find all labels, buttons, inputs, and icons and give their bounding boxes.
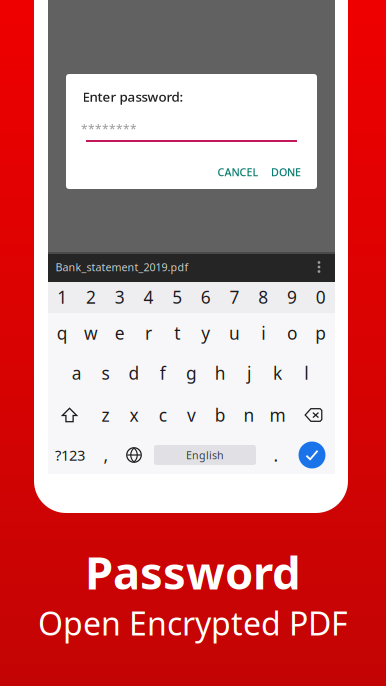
staticText: 0 [316,285,326,308]
staticText: 6 [201,285,211,308]
button[interactable]: ?123 [48,436,92,474]
staticText: 3 [115,285,125,308]
staticText: j [247,361,251,384]
button[interactable]: k [263,354,292,392]
staticText: c [159,403,167,426]
button[interactable]: 1 [48,281,77,312]
staticText: , [103,443,108,466]
button[interactable]: 6 [191,281,220,312]
staticText: i [261,321,265,344]
button[interactable]: y [191,314,220,352]
button[interactable]: 8 [249,281,278,312]
button[interactable]: i [249,314,278,352]
staticText: x [130,403,139,426]
staticText: d [129,361,140,384]
staticText: s [101,361,109,384]
staticText: z [101,403,109,426]
staticText: k [273,361,282,384]
button[interactable]: u [220,314,249,352]
staticText: ?123 [55,445,85,465]
staticText: CANCEL [217,165,258,179]
staticText: u [229,321,240,344]
button[interactable]: t [163,314,191,352]
button[interactable]: d [120,354,148,392]
staticText: w [84,321,98,344]
staticText: Open Encrypted PDF [38,602,348,644]
button[interactable]: p [306,314,335,352]
button[interactable]: DONE [265,160,307,184]
staticText: Enter password: [82,88,183,105]
button[interactable]: a [62,354,91,392]
staticText: 9 [287,285,297,308]
staticText: a [72,361,82,384]
button[interactable]: 4 [134,281,163,312]
button[interactable]: r [134,314,163,352]
staticText: l [304,361,308,384]
button[interactable]: 0 [306,281,335,312]
staticText: h [215,361,226,384]
button[interactable]: f [148,354,177,392]
button[interactable]: n [235,396,263,434]
button[interactable]: More options [308,254,330,280]
staticText: t [174,321,180,344]
staticText: e [115,321,125,344]
button[interactable]: English [154,445,256,465]
button[interactable]: e [105,314,134,352]
staticText: o [287,321,297,344]
staticText: 1 [57,285,67,308]
staticText: p [315,321,326,344]
staticText: 4 [143,285,153,308]
staticText: 2 [86,285,96,308]
button[interactable]: CANCEL [212,160,264,184]
button[interactable]: 7 [220,281,249,312]
button[interactable]: s [91,354,120,392]
button[interactable]: b [206,396,234,434]
button[interactable]: g [177,354,206,392]
button[interactable]: . [262,436,290,474]
staticText: 8 [258,285,268,308]
staticText: ******** [81,121,137,137]
button[interactable]: Enter [295,436,329,474]
button[interactable]: w [77,314,105,352]
button[interactable]: m [263,396,292,434]
button[interactable]: v [177,396,206,434]
staticText: b [215,403,226,426]
staticText: 5 [172,285,182,308]
button[interactable]: c [148,396,177,434]
staticText: y [201,321,210,344]
staticText: . [273,443,278,466]
button[interactable]: 3 [105,281,134,312]
button[interactable]: , [93,436,119,474]
button[interactable]: z [91,396,120,434]
button[interactable]: 2 [77,281,105,312]
button[interactable]: j [235,354,263,392]
button[interactable]: 5 [163,281,191,312]
staticText: v [187,403,196,426]
button[interactable]: l [292,354,321,392]
staticText: English [186,448,224,462]
button[interactable]: q [48,314,77,352]
staticText: Bank_statement_2019.pdf [55,260,188,274]
staticText: 7 [229,285,239,308]
button[interactable]: Shift [48,396,91,434]
button[interactable]: 9 [278,281,306,312]
button[interactable]: Change language [119,436,149,474]
staticText: f [160,361,166,384]
button[interactable]: h [206,354,234,392]
staticText: Password [85,542,301,602]
button[interactable]: x [120,396,148,434]
staticText: n [243,403,254,426]
staticText: r [145,321,152,344]
button[interactable]: Backspace [292,396,335,434]
staticText: g [186,361,197,384]
button[interactable]: o [278,314,306,352]
staticText: q [57,321,68,344]
staticText: DONE [271,165,301,179]
staticText: m [270,403,286,426]
